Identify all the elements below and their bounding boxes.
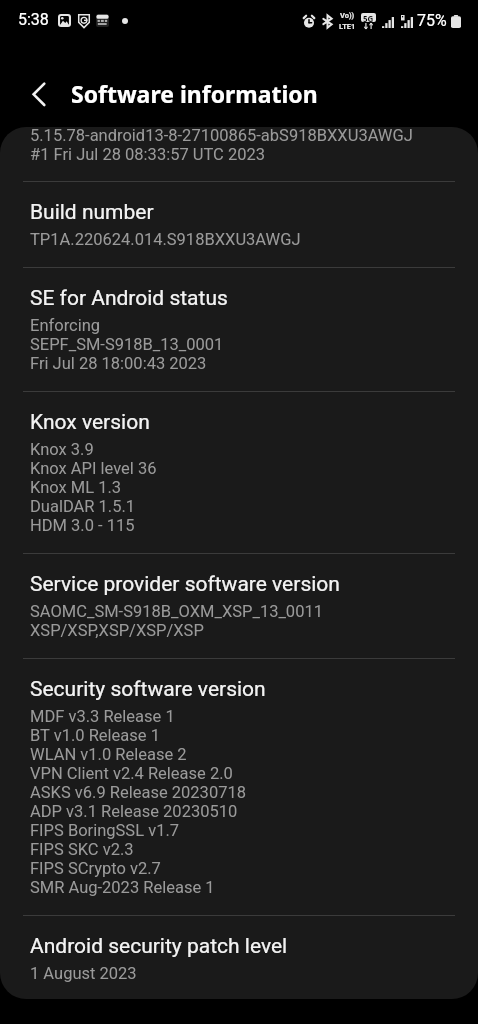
button[interactable]: Build number xyxy=(0,182,478,267)
staticText: Enforcing SEPF_SM-S918B_13_0001 Fri Jul … xyxy=(30,316,224,373)
staticText: 5.15.78-android13-8-27100865-abS918BXXU3… xyxy=(30,127,413,164)
staticText: SAOMC_SM-S918B_OXM_XSP_13_0011 XSP/XSP,X… xyxy=(30,602,323,640)
staticText: Software information xyxy=(71,78,318,109)
button[interactable]: Service provider software version xyxy=(0,554,478,658)
staticText: MDF v3.3 Release 1 BT v1.0 Release 1 WLA… xyxy=(30,707,246,897)
button[interactable]: Knox version xyxy=(0,392,478,553)
staticText: Vo)) xyxy=(340,11,355,20)
staticText: 5G xyxy=(363,13,374,22)
staticText: Security software version xyxy=(30,677,266,702)
staticText: 5:38 xyxy=(18,10,49,29)
button[interactable]: SE for Android status xyxy=(0,268,478,391)
staticText: Knox 3.9 Knox API level 36 Knox ML 1.3 D… xyxy=(30,440,157,535)
staticText: Service provider software version xyxy=(30,572,340,597)
staticText: LTE1 xyxy=(339,22,356,31)
staticText: Build number xyxy=(30,200,154,225)
button[interactable]: Security software version xyxy=(0,659,478,915)
button[interactable]: Android security patch level xyxy=(0,916,478,998)
staticText: SE for Android status xyxy=(30,286,228,311)
staticText: Android security patch level xyxy=(30,934,288,959)
staticText: 75% xyxy=(417,11,447,30)
staticText: TP1A.220624.014.S918BXXU3AWGJ xyxy=(30,230,301,249)
staticText: Knox version xyxy=(30,410,150,435)
staticText: 1 August 2023 xyxy=(30,964,137,983)
button[interactable]: Navigate up xyxy=(16,75,60,119)
